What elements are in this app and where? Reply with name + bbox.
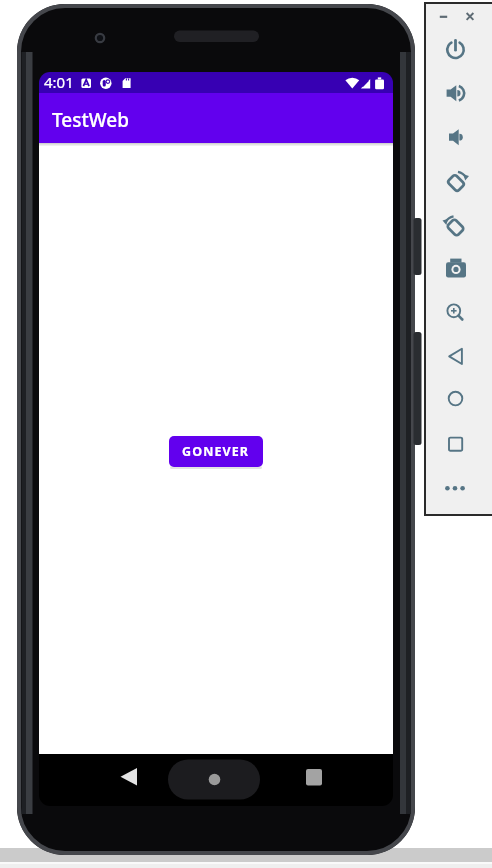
button[interactable] xyxy=(434,248,478,291)
button[interactable] xyxy=(434,160,478,203)
button[interactable] xyxy=(292,760,338,800)
button[interactable] xyxy=(434,468,478,511)
button[interactable] xyxy=(435,9,452,25)
button[interactable] xyxy=(461,9,478,25)
staticText: TestWeb xyxy=(52,107,129,133)
button[interactable]: GONEVER xyxy=(169,436,263,467)
button[interactable] xyxy=(434,28,478,71)
button[interactable] xyxy=(434,204,478,247)
button[interactable] xyxy=(434,116,478,159)
button[interactable] xyxy=(434,292,478,335)
button[interactable] xyxy=(434,424,478,467)
button[interactable] xyxy=(434,72,478,115)
button[interactable] xyxy=(168,759,260,800)
button[interactable] xyxy=(112,760,158,800)
staticText: 4:01 xyxy=(44,72,74,92)
staticText: GONEVER xyxy=(182,443,250,460)
button[interactable] xyxy=(434,336,478,379)
button[interactable] xyxy=(434,380,478,423)
